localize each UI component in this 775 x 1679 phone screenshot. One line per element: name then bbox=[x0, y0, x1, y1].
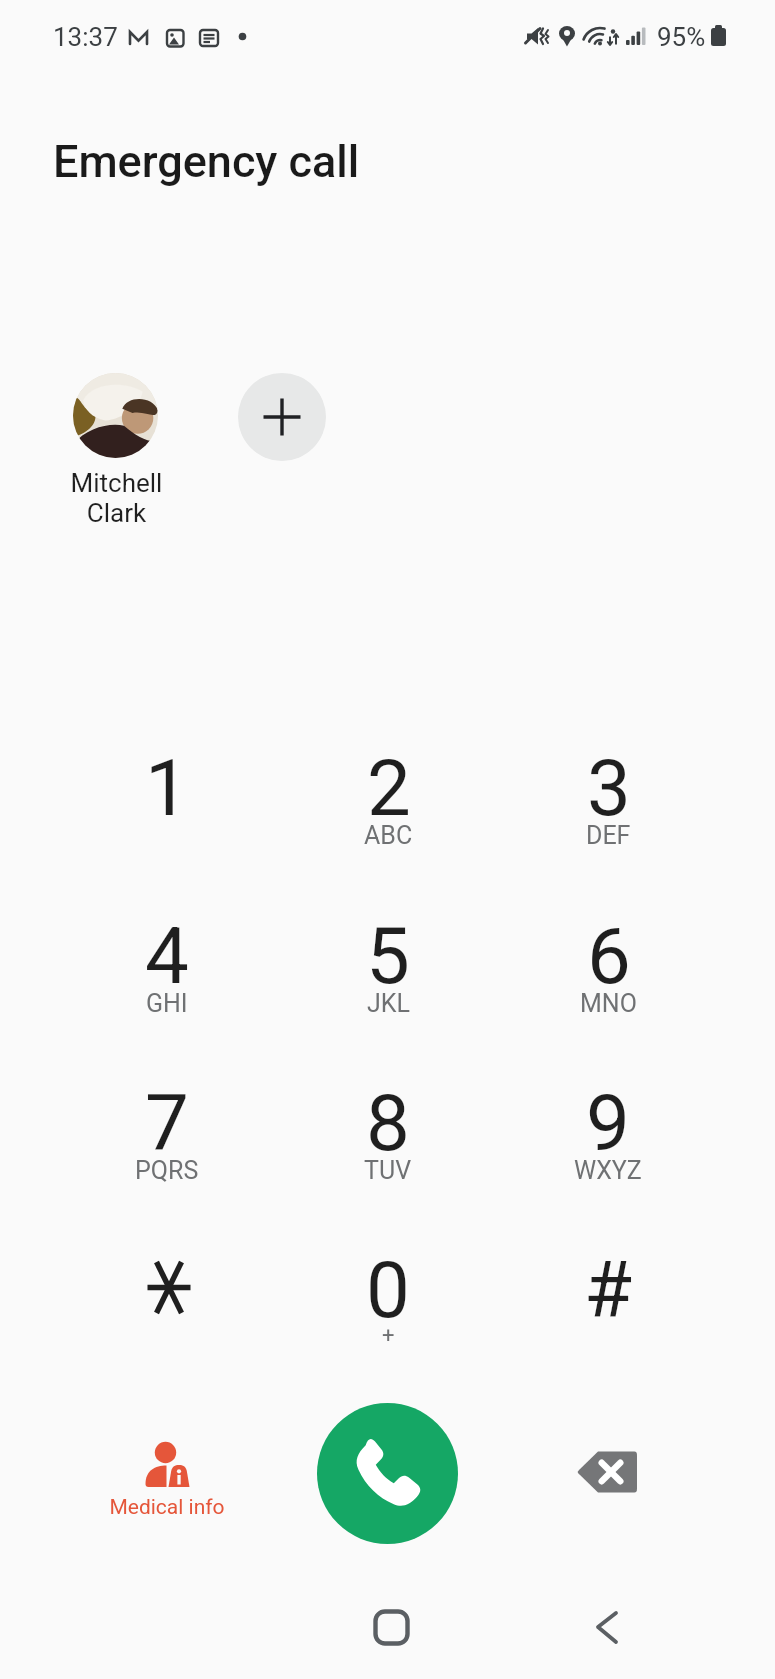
button[interactable]: 6 bbox=[508, 893, 708, 1043]
staticText: 3 bbox=[587, 743, 631, 834]
staticText: PQRS bbox=[135, 1156, 199, 1185]
staticText: Medical info bbox=[109, 1495, 225, 1520]
button[interactable]: Medical info bbox=[98, 1432, 238, 1528]
button[interactable]: 3 bbox=[508, 725, 708, 875]
button[interactable]: Mitchell Clark bbox=[56, 365, 177, 533]
staticText: # bbox=[584, 1245, 633, 1336]
button[interactable]: Back bbox=[572, 1592, 642, 1662]
staticText: Emergency call bbox=[53, 135, 360, 188]
button[interactable] bbox=[67, 1227, 267, 1377]
staticText: DEF bbox=[586, 821, 631, 850]
staticText: 2 bbox=[367, 743, 411, 834]
staticText: + bbox=[382, 1323, 395, 1349]
staticText: 1 bbox=[145, 743, 189, 834]
staticText: 8 bbox=[366, 1078, 410, 1169]
staticText: 0 bbox=[366, 1245, 410, 1336]
staticText: 95% bbox=[657, 22, 706, 52]
staticText: 9 bbox=[586, 1078, 630, 1169]
button[interactable]: Call bbox=[317, 1403, 458, 1544]
staticText: MNO bbox=[580, 989, 637, 1018]
button[interactable]: # bbox=[508, 1227, 708, 1377]
button[interactable]: 2 bbox=[288, 725, 488, 875]
button[interactable]: 0 bbox=[288, 1227, 488, 1377]
staticText: ABC bbox=[364, 821, 413, 850]
staticText: Mitchell Clark bbox=[56, 468, 177, 528]
staticText: GHI bbox=[146, 989, 188, 1018]
button[interactable]: Add contact bbox=[238, 373, 326, 461]
staticText: JKL bbox=[367, 989, 410, 1018]
button[interactable]: Home bbox=[355, 1592, 425, 1662]
staticText: 5 bbox=[366, 911, 410, 1002]
staticText: 6 bbox=[587, 911, 631, 1002]
button[interactable]: 9 bbox=[508, 1060, 708, 1210]
button[interactable]: 4 bbox=[67, 893, 267, 1043]
staticText: WXYZ bbox=[574, 1156, 642, 1185]
staticText: 7 bbox=[145, 1078, 189, 1169]
button[interactable]: 1 bbox=[67, 725, 267, 875]
button[interactable]: 8 bbox=[288, 1060, 488, 1210]
button[interactable]: 7 bbox=[67, 1060, 267, 1210]
staticText: 13:37 bbox=[53, 22, 118, 52]
staticText: 4 bbox=[145, 911, 189, 1002]
button[interactable]: 5 bbox=[288, 893, 488, 1043]
staticText: TUV bbox=[364, 1156, 412, 1185]
button[interactable]: Backspace bbox=[558, 1437, 654, 1507]
